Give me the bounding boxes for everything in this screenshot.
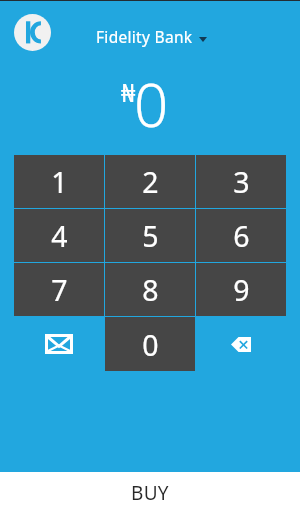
button[interactable]: Backspace [196, 317, 286, 371]
button[interactable]: Kudi logo [14, 14, 51, 51]
button[interactable]: 9 [196, 263, 286, 316]
button[interactable]: 3 [196, 155, 286, 208]
staticText: ₦ [121, 75, 136, 109]
button[interactable]: 4 [14, 209, 104, 262]
button[interactable]: 7 [14, 263, 104, 316]
staticText: 2 [142, 163, 159, 202]
button[interactable]: 0 [105, 317, 195, 371]
staticText: 0 [134, 63, 169, 145]
staticText: 0 [142, 326, 159, 365]
staticText: Fidelity Bank [96, 26, 193, 47]
staticText: 6 [233, 217, 250, 256]
button[interactable]: BUY [0, 472, 300, 512]
staticText: BUY [131, 480, 169, 506]
staticText: 3 [233, 163, 250, 202]
button[interactable]: 8 [105, 263, 195, 316]
button[interactable]: Message [14, 317, 104, 371]
button[interactable]: 2 [105, 155, 195, 208]
button[interactable]: Fidelity Bank [96, 26, 207, 47]
button[interactable]: 6 [196, 209, 286, 262]
staticText: 9 [233, 271, 250, 310]
staticText: 5 [142, 217, 159, 256]
staticText: 7 [51, 271, 68, 310]
staticText: 4 [51, 217, 68, 256]
button[interactable]: 5 [105, 209, 195, 262]
staticText: 8 [142, 271, 159, 310]
button[interactable]: 1 [14, 155, 104, 208]
staticText: 1 [51, 163, 68, 202]
